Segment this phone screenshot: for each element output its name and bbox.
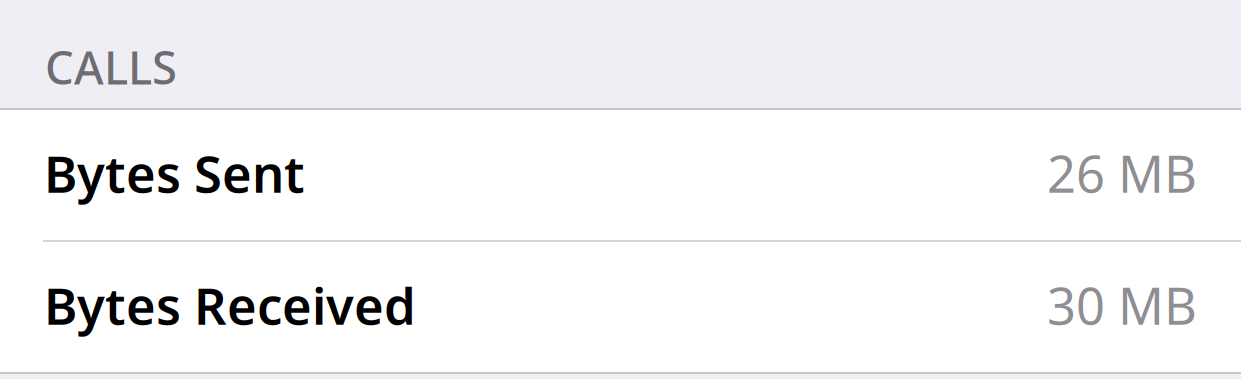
button[interactable]: Bytes Received bbox=[0, 242, 1241, 372]
button[interactable]: Bytes Sent bbox=[0, 110, 1241, 240]
staticText: CALLS bbox=[45, 37, 177, 97]
staticText: 26 MB bbox=[1047, 139, 1197, 207]
staticText: 30 MB bbox=[1047, 271, 1197, 339]
staticText: Bytes Received bbox=[44, 271, 416, 339]
staticText: Bytes Sent bbox=[44, 139, 305, 207]
